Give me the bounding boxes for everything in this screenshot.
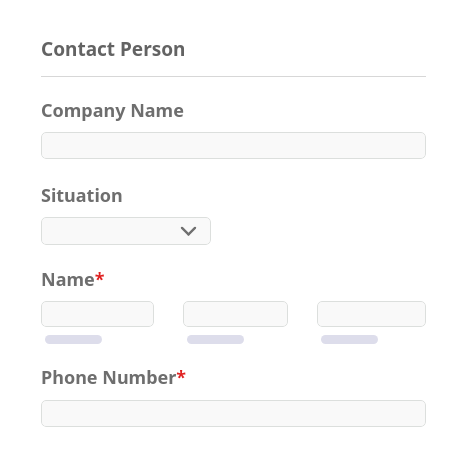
staticText: Name* (41, 267, 105, 292)
staticText: Phone Number* (41, 365, 187, 390)
button[interactable] (41, 400, 426, 427)
button[interactable] (41, 301, 154, 327)
staticText: Company Name (41, 98, 184, 123)
staticText: Contact Person (41, 36, 186, 62)
button[interactable] (317, 301, 426, 327)
button[interactable] (183, 301, 288, 327)
button[interactable]: Situation dropdown (41, 217, 211, 245)
button[interactable] (41, 132, 426, 159)
staticText: Situation (41, 183, 123, 208)
